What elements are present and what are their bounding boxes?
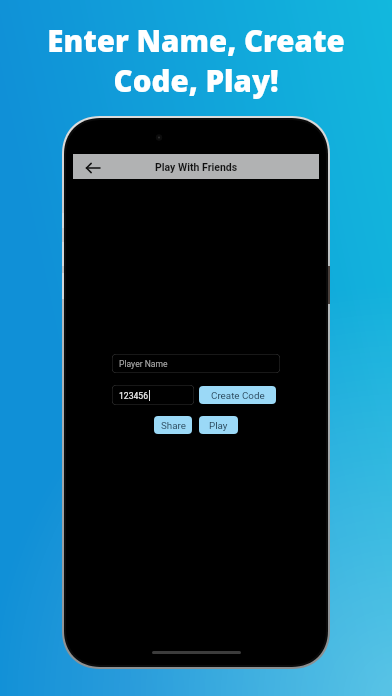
button[interactable]: 123456 [112, 385, 194, 405]
button[interactable]: Back [83, 158, 103, 178]
staticText: Player Name [119, 359, 168, 369]
button[interactable]: Share [154, 416, 192, 434]
button[interactable]: Create Code [199, 386, 276, 404]
button[interactable]: Play [199, 416, 238, 434]
staticText: Create Code [211, 390, 265, 401]
staticText: Play [209, 420, 228, 431]
button[interactable]: Player Name [112, 354, 280, 373]
staticText: Play With Friends [155, 161, 238, 173]
staticText: Share [161, 420, 186, 431]
staticText: Enter Name, Create Code, Play! [0, 20, 392, 100]
button[interactable]: Play With Friends [73, 154, 319, 179]
staticText: 123456 [119, 391, 148, 401]
